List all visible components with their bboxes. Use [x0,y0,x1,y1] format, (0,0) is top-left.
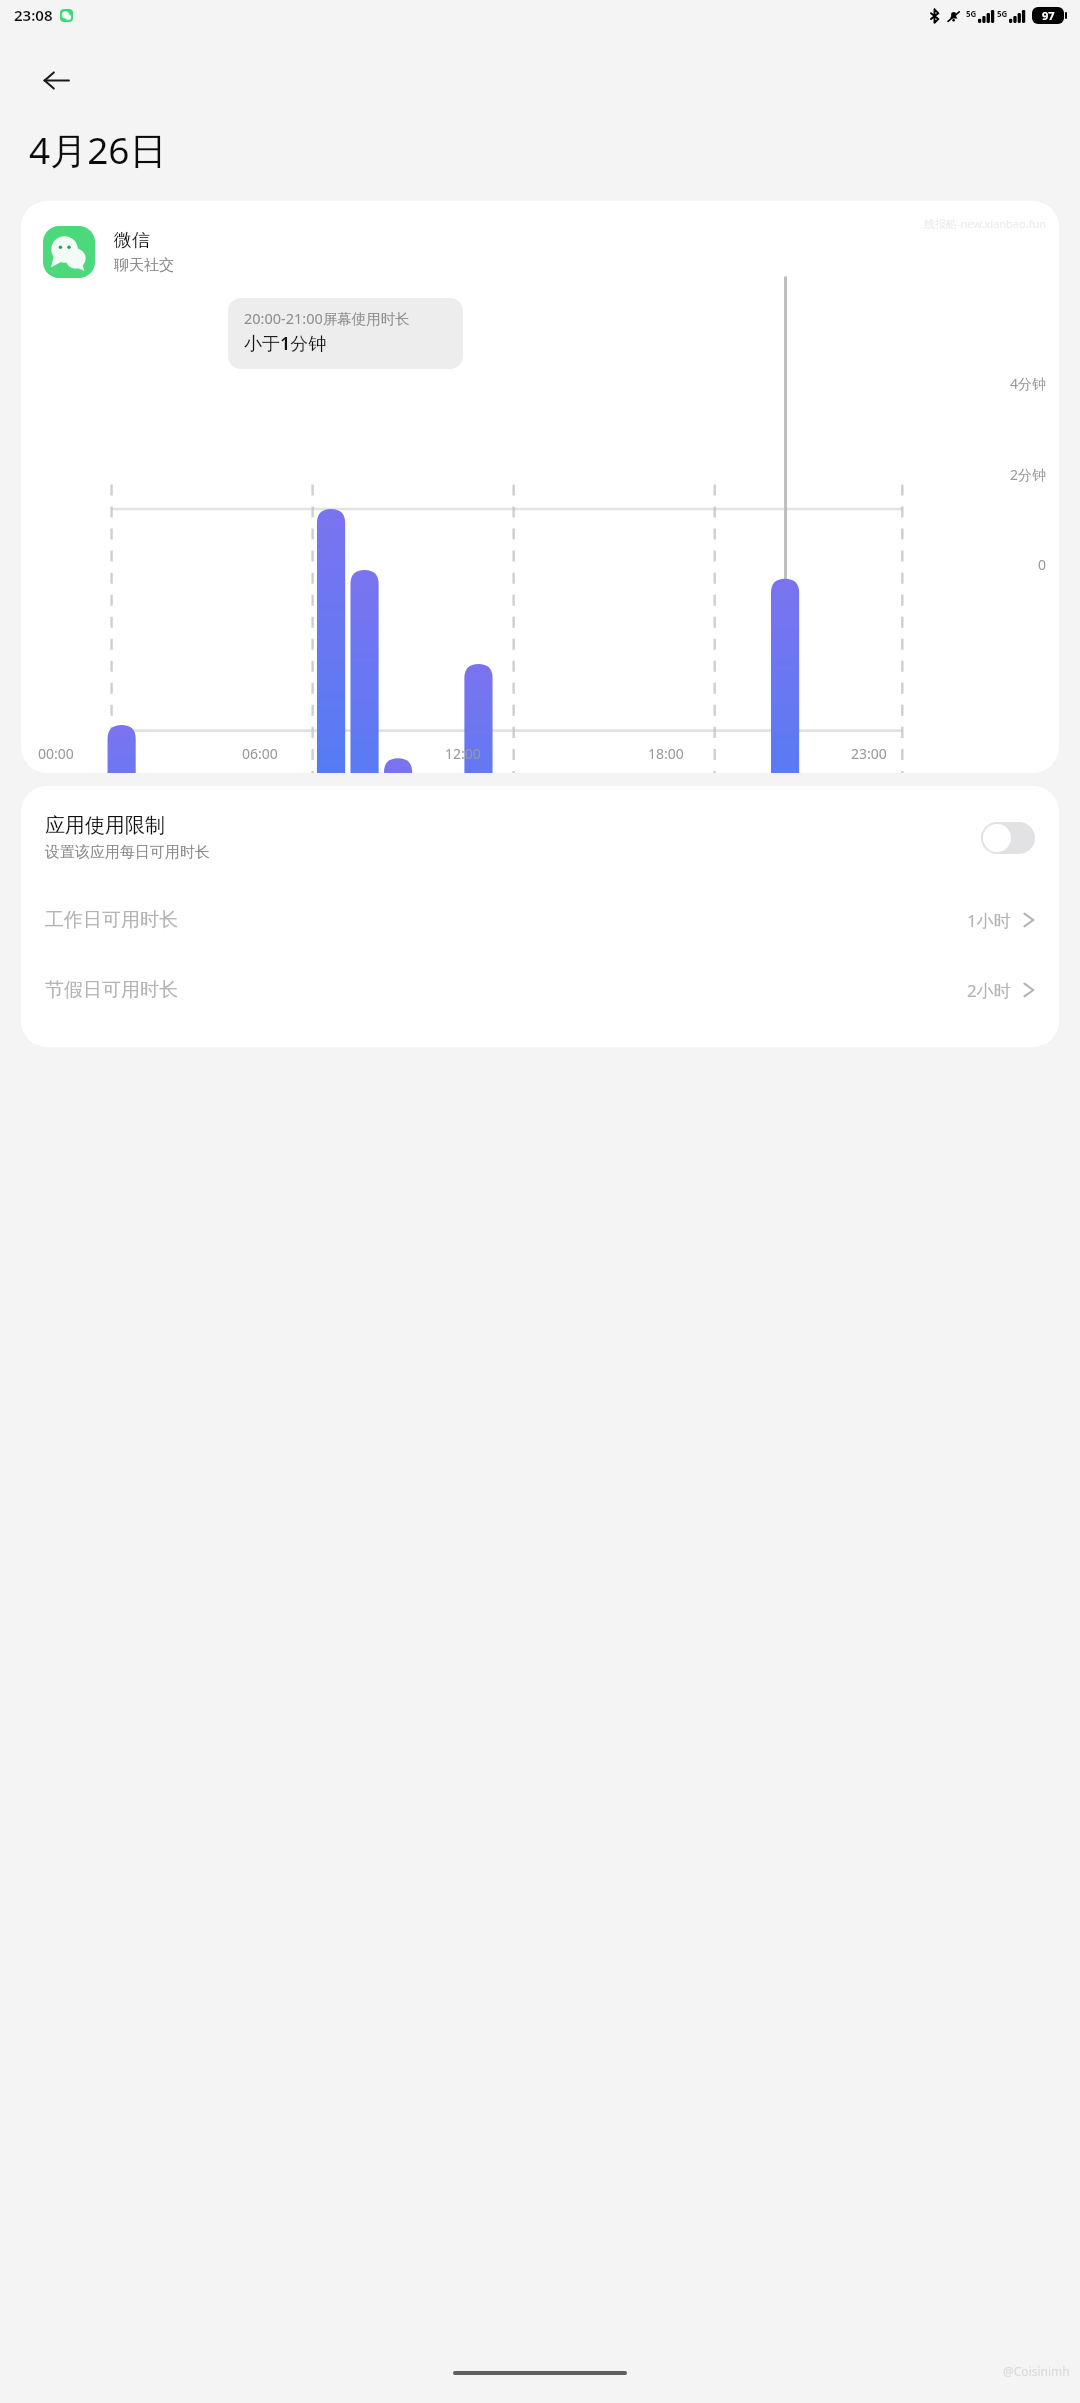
staticText: 23:08 [14,5,53,25]
staticText: 微信 [114,229,150,252]
button[interactable]: 应用使用限制 [21,786,1059,885]
staticText: 节假日可用时长 [45,978,967,1002]
staticText: 2分钟 [1010,465,1047,484]
button[interactable]: 节假日可用时长 [21,955,1059,1025]
staticText: 06:00 [242,744,445,763]
staticText: 2小时 [967,979,1011,1002]
staticText: 18:00 [648,744,851,763]
staticText: 5G [966,8,977,19]
staticText: 23:00 [851,744,997,763]
staticText: 工作日可用时长 [45,908,967,932]
staticText: 4分钟 [1010,374,1047,393]
button[interactable]: App usage limit toggle [981,822,1035,854]
button[interactable]: Back [34,58,78,102]
staticText: 小于1分钟 [244,331,327,356]
staticText: @Coisinimh [1003,2363,1070,2379]
staticText: 设置该应用每日可用时长 [45,843,210,862]
staticText: 4月26日 [29,124,167,175]
staticText: 线报酷-new.xianbao.fun [924,216,1047,231]
staticText: 5G [997,8,1008,19]
button[interactable]: 工作日可用时长 [21,885,1059,955]
staticText: 00:00 [38,744,242,763]
staticText: 应用使用限制 [45,813,165,838]
staticText: 97 [1042,8,1055,23]
staticText: 聊天社交 [114,256,174,275]
staticText: 20:00-21:00屏幕使用时长 [244,308,410,328]
staticText: 1小时 [967,909,1011,932]
staticText: 12:00 [445,744,648,763]
staticText: 0 [1038,555,1047,574]
